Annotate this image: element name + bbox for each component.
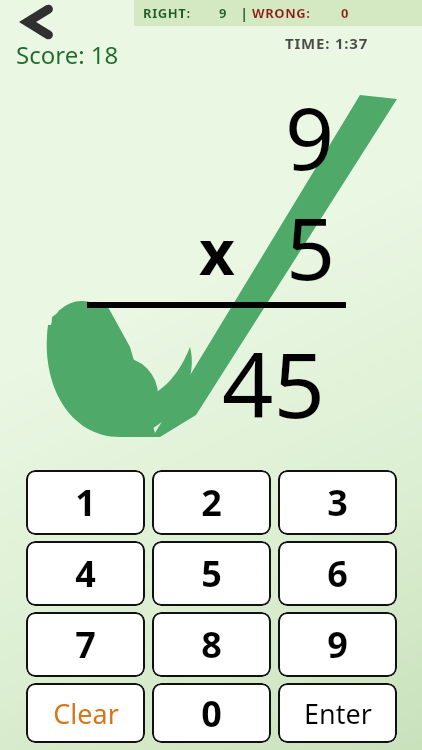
staticText: Clear [53,695,119,732]
staticText: 0 [341,4,349,22]
staticText: WRONG: [252,4,311,22]
button[interactable]: Back [12,2,64,42]
button[interactable]: 1 [26,470,145,535]
button[interactable]: Enter [278,683,397,743]
button[interactable]: 0 [152,683,271,743]
staticText: 4 [75,549,96,598]
staticText: 5 [286,188,336,305]
staticText: 5 [201,549,222,598]
staticText: 6 [327,549,348,598]
staticText: RIGHT: [143,4,191,22]
button[interactable]: 5 [152,541,271,606]
staticText: Enter [304,695,372,732]
staticText: Score: 18 [16,38,119,71]
button[interactable]: Clear [26,683,145,743]
button[interactable]: 4 [26,541,145,606]
button[interactable]: 8 [152,612,271,677]
staticText: 45 [222,322,325,445]
staticText: 1 [75,478,96,527]
button[interactable]: 9 [278,612,397,677]
button[interactable]: 6 [278,541,397,606]
button[interactable]: 7 [26,612,145,677]
staticText: 2 [201,478,222,527]
staticText: | [240,3,249,23]
staticText: 9 [219,4,227,22]
staticText: 9 [327,620,348,669]
staticText: 9 [285,78,335,195]
staticText: 7 [75,620,96,669]
button[interactable]: 2 [152,470,271,535]
staticText: 8 [201,620,222,669]
staticText: 0 [201,689,222,738]
staticText: TIME: 1:37 [285,33,369,53]
staticText: x [199,209,235,293]
button[interactable]: 3 [278,470,397,535]
staticText: 3 [327,478,348,527]
